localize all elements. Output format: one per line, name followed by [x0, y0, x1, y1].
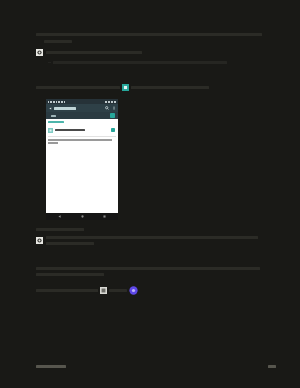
button[interactable]: Back — [58, 215, 61, 218]
button[interactable]: Bluetooth on — [110, 113, 115, 118]
button[interactable]: Search — [105, 106, 109, 110]
button[interactable]: Back — [48, 106, 53, 111]
button[interactable]: Back — [46, 99, 118, 220]
button[interactable]: Recent apps — [103, 215, 106, 218]
button[interactable]: More options — [112, 106, 116, 110]
button[interactable]: Device settings — [46, 126, 118, 134]
button[interactable]: Device settings — [111, 128, 115, 132]
button[interactable]: Home — [81, 215, 84, 218]
